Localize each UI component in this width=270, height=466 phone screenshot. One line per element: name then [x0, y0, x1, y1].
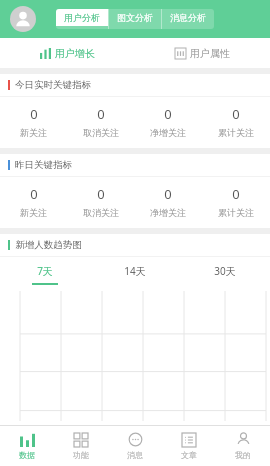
button[interactable]: 0: [134, 105, 202, 138]
button[interactable]: 图文分析: [109, 9, 161, 26]
button[interactable]: 消息: [108, 426, 162, 466]
staticText: 累计关注: [218, 207, 254, 218]
staticText: 文章: [181, 450, 197, 460]
staticText: 图文分析: [117, 12, 153, 23]
button[interactable]: 0: [134, 185, 202, 218]
button[interactable]: 30天: [180, 257, 270, 285]
staticText: 用户属性: [190, 47, 230, 60]
staticText: 7天: [37, 264, 53, 278]
button[interactable]: 0: [0, 185, 67, 218]
staticText: 30天: [214, 264, 236, 278]
button[interactable]: 功能: [54, 426, 108, 466]
button[interactable]: 7天: [0, 257, 90, 285]
staticText: 取消关注: [83, 127, 119, 138]
staticText: 消息分析: [170, 12, 206, 23]
staticText: 功能: [73, 450, 89, 460]
staticText: 消息: [127, 450, 143, 460]
button[interactable]: Profile: [10, 6, 36, 32]
button[interactable]: 0: [202, 105, 270, 138]
staticText: 昨日关键指标: [15, 159, 72, 171]
staticText: 取消关注: [83, 207, 119, 218]
staticText: 0: [164, 105, 172, 123]
staticText: 我的: [235, 450, 251, 460]
button[interactable]: 用户增长: [0, 38, 135, 68]
button[interactable]: 0: [67, 185, 134, 218]
staticText: 累计关注: [218, 127, 254, 138]
staticText: 新增人数趋势图: [15, 239, 82, 251]
staticText: 净增关注: [150, 207, 186, 218]
staticText: 用户增长: [55, 47, 95, 60]
button[interactable]: 14天: [90, 257, 180, 285]
staticText: 0: [164, 185, 172, 203]
button[interactable]: 文章: [162, 426, 216, 466]
button[interactable]: 我的: [216, 426, 270, 466]
staticText: 0: [97, 185, 105, 203]
staticText: 用户分析: [64, 12, 100, 23]
staticText: 0: [97, 105, 105, 123]
staticText: 数据: [19, 450, 35, 460]
button[interactable]: 0: [202, 185, 270, 218]
staticText: 14天: [124, 264, 146, 278]
button[interactable]: 0: [67, 105, 134, 138]
button[interactable]: 用户属性: [135, 38, 270, 68]
staticText: 0: [232, 105, 240, 123]
button[interactable]: 用户分析: [56, 9, 108, 26]
staticText: 0: [30, 185, 38, 203]
button[interactable]: 消息分析: [162, 9, 214, 26]
staticText: 今日实时关键指标: [15, 79, 91, 91]
staticText: 0: [30, 105, 38, 123]
button[interactable]: 数据: [0, 426, 54, 466]
staticText: 新关注: [20, 207, 47, 218]
staticText: 新关注: [20, 127, 47, 138]
staticText: 净增关注: [150, 127, 186, 138]
staticText: 0: [232, 185, 240, 203]
button[interactable]: 0: [0, 105, 67, 138]
